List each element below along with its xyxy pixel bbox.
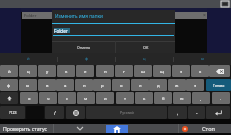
staticText: Folder [24, 13, 37, 19]
button[interactable]: Стоп [178, 124, 231, 133]
staticText: , [200, 95, 202, 101]
button[interactable]: г [115, 65, 133, 77]
staticText: Русский [120, 110, 134, 115]
button[interactable]: х [191, 65, 209, 77]
staticText: Изменить имя папки [55, 13, 103, 19]
button[interactable]: Проверить статус [0, 124, 53, 133]
button[interactable]: Shift [0, 92, 18, 104]
button[interactable]: т [116, 92, 134, 104]
staticText: ы [201, 56, 205, 62]
button[interactable]: ю [173, 92, 191, 104]
staticText: х [199, 68, 202, 74]
button[interactable]: ф [0, 79, 18, 91]
staticText: с [66, 95, 69, 101]
staticText: ц [27, 68, 30, 74]
button[interactable]: к [57, 65, 75, 77]
button[interactable]: OK [116, 41, 175, 53]
staticText: у [46, 68, 49, 74]
staticText: × [203, 12, 206, 19]
staticText: п [83, 82, 86, 88]
button[interactable]: с [58, 92, 76, 104]
button[interactable]: й [0, 53, 57, 65]
staticText: и [104, 95, 107, 101]
button[interactable]: ч [39, 92, 57, 104]
staticText: м [84, 95, 88, 101]
staticText: л [139, 82, 142, 88]
staticText: о [120, 82, 123, 88]
button[interactable]: и [96, 92, 114, 104]
staticText: й [8, 68, 11, 74]
button[interactable]: е [76, 65, 94, 77]
button[interactable]: э [186, 79, 204, 91]
staticText: ю [180, 95, 184, 101]
staticText: OK [143, 45, 149, 50]
staticText: ш [141, 68, 145, 74]
button[interactable]: Folder [22, 12, 207, 19]
staticText: . [220, 95, 222, 101]
staticText: в [46, 82, 49, 88]
button[interactable]: б [154, 92, 172, 104]
button[interactable]: л [131, 79, 149, 91]
button[interactable]: Отмена [52, 41, 115, 53]
button[interactable]: Готово [206, 79, 231, 91]
staticText: щ [160, 68, 164, 74]
button[interactable]: о [112, 79, 130, 91]
staticText: ь [143, 95, 146, 101]
staticText: д [157, 82, 160, 88]
button[interactable]: щ [153, 65, 171, 77]
button[interactable]: ?123 [0, 106, 25, 119]
button[interactable]: п [75, 79, 93, 91]
button[interactable]: , [192, 92, 210, 104]
button[interactable]: ж [168, 79, 186, 91]
button[interactable]: в [38, 79, 56, 91]
staticText: ц [143, 56, 146, 62]
button[interactable]: н [96, 65, 114, 77]
staticText: г [123, 68, 125, 74]
staticText: ж [175, 82, 179, 88]
staticText: е [84, 68, 87, 74]
button[interactable]: ь [135, 92, 153, 104]
button[interactable]: ы [19, 79, 37, 91]
button[interactable]: а [56, 79, 74, 91]
staticText: з [180, 68, 183, 74]
staticText: Проверить статус [3, 125, 48, 132]
staticText: й [27, 56, 30, 62]
staticText: к [65, 68, 68, 74]
staticText: - [196, 110, 198, 116]
button[interactable]: з [172, 65, 190, 77]
staticText: , [177, 110, 179, 116]
button[interactable]: Change language [66, 106, 85, 119]
button[interactable]: Enter [206, 106, 230, 119]
button[interactable]: ц [19, 65, 37, 77]
staticText: ?123 [9, 110, 17, 115]
staticText: ф [85, 56, 89, 62]
staticText: / [54, 110, 56, 116]
button[interactable]: у [38, 65, 56, 77]
button[interactable]: , [168, 106, 187, 119]
button[interactable]: Home [106, 125, 128, 133]
button[interactable]: й [0, 65, 18, 77]
staticText: н [104, 68, 107, 74]
button[interactable]: ц [116, 53, 173, 65]
staticText: р [101, 82, 104, 88]
staticText: Стоп [202, 125, 215, 133]
staticText: Готово [213, 83, 225, 88]
button[interactable]: Русский [86, 106, 167, 119]
staticText: э [194, 82, 197, 88]
button[interactable]: - [188, 106, 205, 119]
button[interactable]: ы [174, 53, 231, 65]
button[interactable]: ш [134, 65, 152, 77]
button[interactable]: Expand [53, 124, 106, 133]
staticText: б [162, 95, 165, 101]
button[interactable]: р [93, 79, 111, 91]
button[interactable]: . [212, 92, 230, 104]
button[interactable]: я [20, 92, 38, 104]
button[interactable]: м [77, 92, 95, 104]
staticText: а [64, 82, 67, 88]
button[interactable]: Backspace [209, 65, 230, 77]
staticText: я [28, 95, 31, 101]
button[interactable]: д [149, 79, 167, 91]
button[interactable]: ф [58, 53, 115, 65]
button[interactable]: / [45, 106, 64, 119]
